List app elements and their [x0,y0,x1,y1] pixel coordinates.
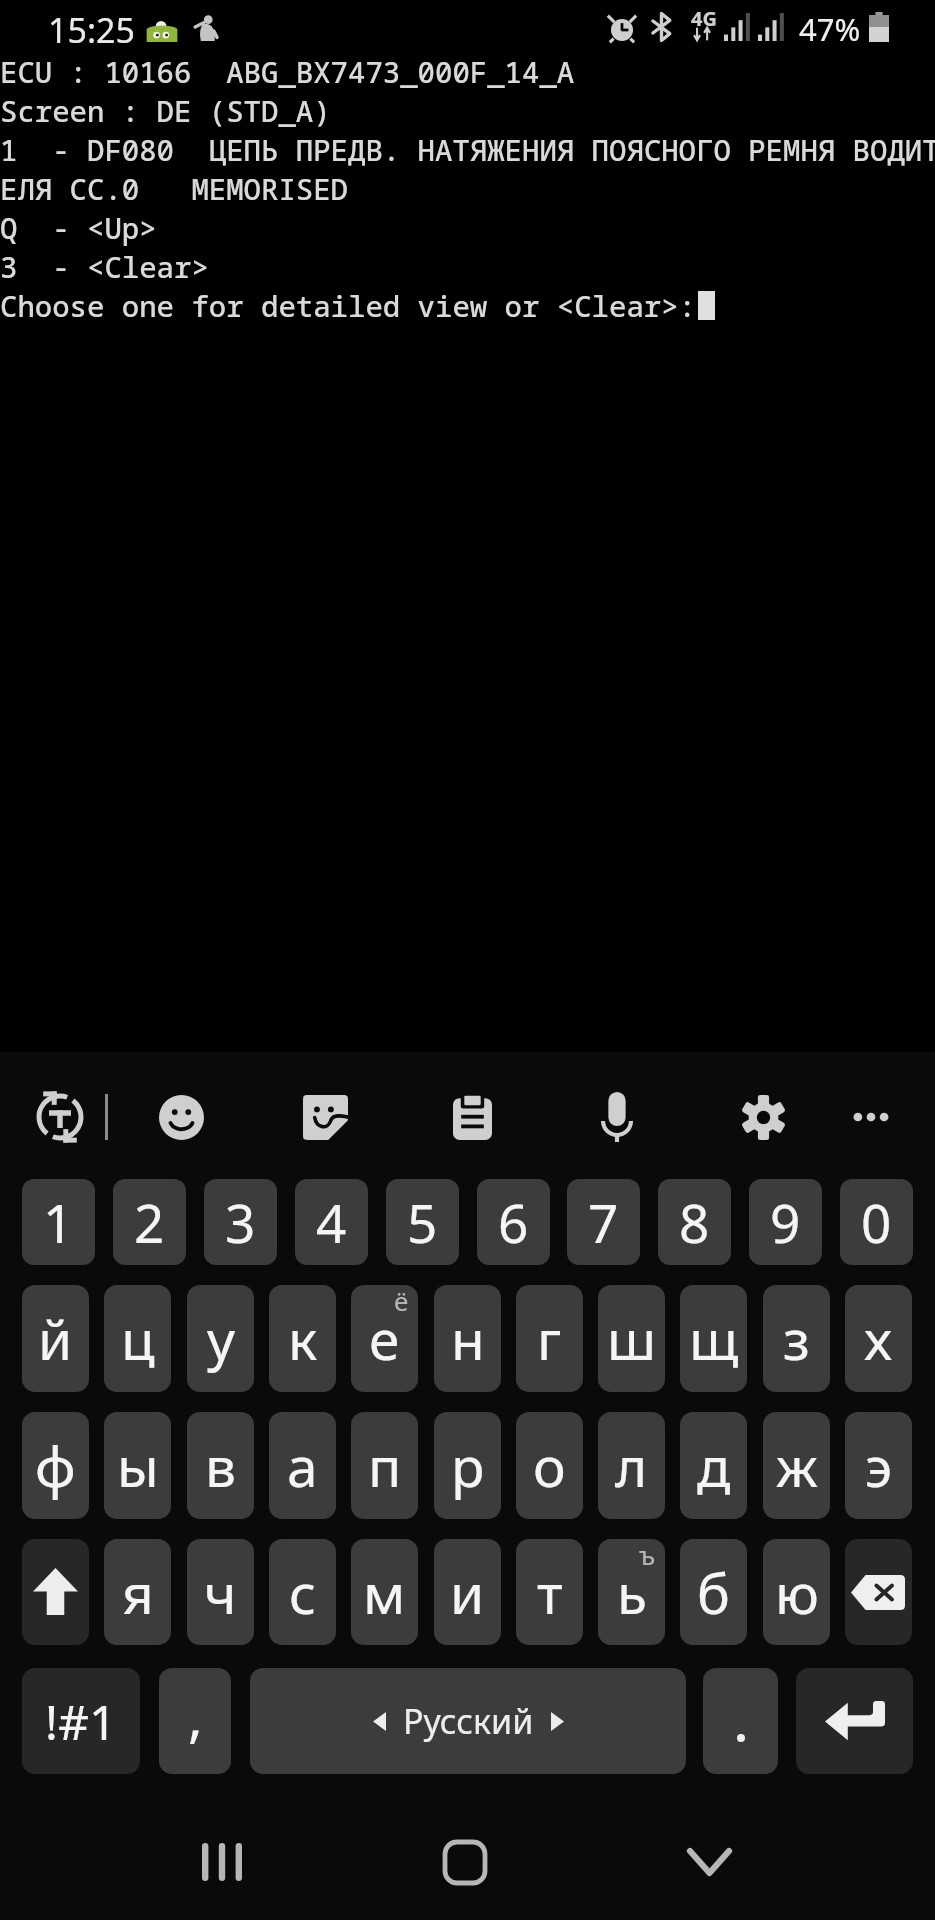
button[interactable]: Period [703,1668,778,1774]
staticText: м [363,1555,406,1630]
staticText: г [537,1301,562,1376]
staticText: э [865,1428,893,1503]
button[interactable]: о [516,1412,583,1519]
button[interactable]: м [351,1539,418,1645]
staticText: Screen : DE (STD_A) [0,91,331,130]
button[interactable]: 0 [840,1179,913,1265]
button[interactable]: щ [680,1285,747,1392]
button[interactable]: Enter [796,1668,913,1774]
button[interactable]: ц [104,1285,171,1392]
button[interactable]: з [763,1285,830,1392]
button[interactable]: Settings [730,1084,796,1150]
button[interactable]: Русский [250,1668,686,1774]
staticText: 3 - <Clear> [0,247,209,286]
staticText: Русский [403,1698,534,1744]
button[interactable]: Recent apps [162,1812,282,1912]
button[interactable]: More options [838,1084,904,1150]
button[interactable]: г [516,1285,583,1392]
button[interactable]: с [269,1539,336,1645]
button[interactable]: ж [763,1412,830,1519]
button[interactable]: ь [598,1539,665,1645]
staticText: у [207,1301,235,1376]
staticText: й [38,1301,73,1376]
button[interactable]: я [104,1539,171,1645]
button[interactable]: ю [763,1539,830,1645]
button[interactable]: Clipboard [439,1084,505,1150]
button[interactable]: !#1 [22,1668,140,1774]
button[interactable]: у [187,1285,254,1392]
staticText: 15:25 [48,7,135,53]
staticText: 6 [498,1186,529,1258]
button[interactable]: ш [598,1285,665,1392]
button[interactable]: п [351,1412,418,1519]
staticText: к [288,1301,318,1376]
staticText: 8 [679,1186,710,1258]
button[interactable]: ы [104,1412,171,1519]
button[interactable]: э [845,1412,912,1519]
staticText: 2 [134,1186,165,1258]
staticText: ч [204,1555,237,1630]
staticText: о [533,1428,566,1503]
staticText: Q - <Up> [0,208,157,247]
staticText: п [368,1428,402,1503]
button[interactable]: 6 [477,1179,550,1265]
button[interactable]: р [434,1412,501,1519]
button[interactable]: Shift [22,1539,89,1645]
button[interactable]: й [22,1285,89,1392]
staticText: ы [117,1428,159,1503]
staticText: ф [35,1428,76,1503]
button[interactable]: 8 [658,1179,731,1265]
button[interactable]: б [680,1539,747,1645]
button[interactable]: Emoji [148,1084,214,1150]
staticText: ъ [639,1539,656,1572]
button[interactable]: и [434,1539,501,1645]
button[interactable]: л [598,1412,665,1519]
button[interactable]: н [434,1285,501,1392]
button[interactable]: Backspace [845,1539,912,1645]
staticText: !#1 [45,1689,117,1754]
button[interactable]: 9 [749,1179,822,1265]
button[interactable]: 5 [386,1179,459,1265]
button[interactable]: 7 [567,1179,640,1265]
staticText: 47% [799,8,861,50]
staticText: е [369,1301,400,1376]
staticText: в [205,1428,237,1503]
button[interactable]: 4 [295,1179,368,1265]
staticText: ь [617,1555,647,1630]
button[interactable]: т [516,1539,583,1645]
staticText: ш [607,1301,657,1376]
staticText: р [451,1428,485,1503]
button[interactable]: , [159,1668,231,1774]
staticText: и [450,1555,485,1630]
staticText: б [697,1555,730,1630]
staticText: н [451,1301,485,1376]
staticText: 3 [225,1186,256,1258]
button[interactable]: ч [187,1539,254,1645]
staticText: 7 [588,1186,619,1258]
staticText: ю [775,1555,819,1630]
staticText: т [537,1555,563,1630]
staticText: 4 [316,1186,347,1258]
button[interactable]: Home [405,1812,525,1912]
staticText: ЕЛЯ CC.0 MEMORISED [0,169,349,208]
button[interactable]: е [351,1285,418,1392]
staticText: щ [689,1301,739,1376]
staticText: з [783,1301,810,1376]
button[interactable]: Stickers [292,1084,358,1150]
button[interactable]: д [680,1412,747,1519]
button[interactable]: а [269,1412,336,1519]
staticText: 1 - DF080 ЦЕПЬ ПРЕДВ. НАТЯЖЕНИЯ ПОЯСНОГО… [0,130,935,169]
button[interactable]: Translate [27,1084,93,1150]
button[interactable]: х [845,1285,912,1392]
button[interactable]: ф [22,1412,89,1519]
button[interactable]: в [187,1412,254,1519]
button[interactable]: Voice input [584,1084,650,1150]
staticText: , [188,1678,203,1753]
button[interactable]: 1 [22,1179,95,1265]
staticText: л [615,1428,648,1503]
staticText: д [697,1428,731,1503]
button[interactable]: к [269,1285,336,1392]
button[interactable]: 2 [113,1179,186,1265]
button[interactable]: Hide keyboard [649,1812,769,1912]
button[interactable]: 3 [204,1179,277,1265]
